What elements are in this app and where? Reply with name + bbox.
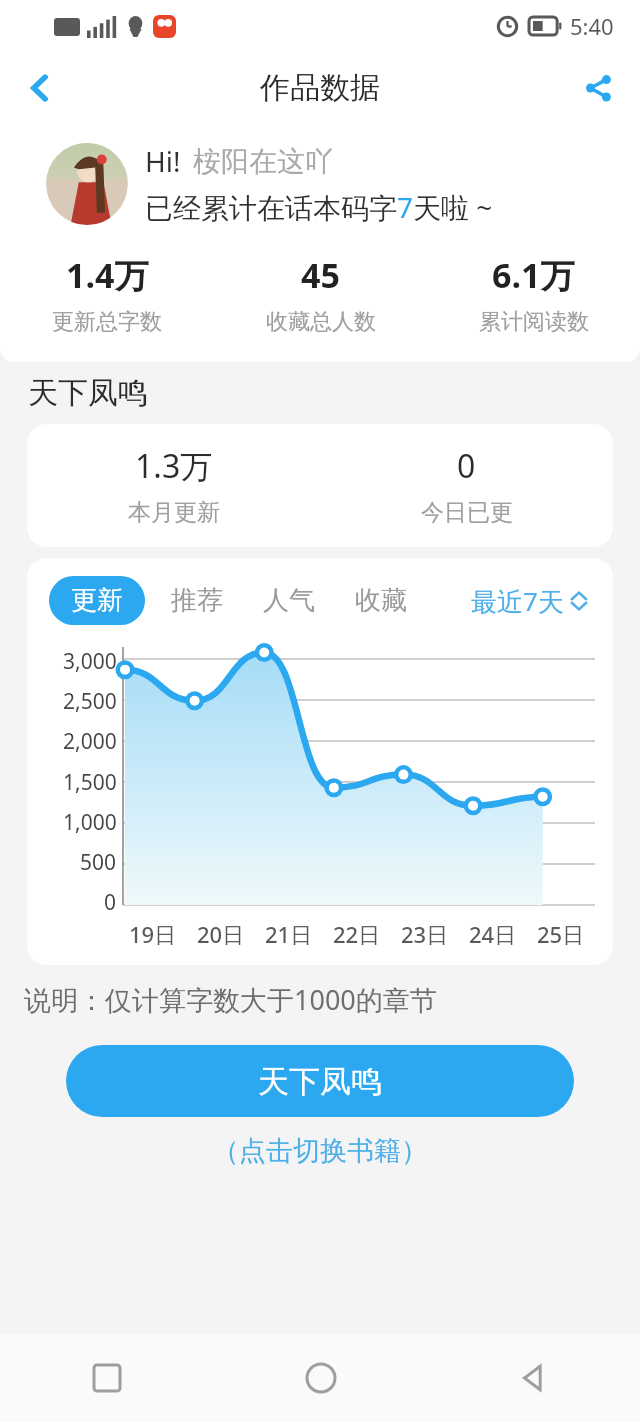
staticText: 更新总字数 — [52, 308, 162, 336]
button[interactable]: Share — [568, 58, 628, 118]
button[interactable]: 天下凤鸣 — [66, 1045, 574, 1117]
staticText: 今日已更 — [421, 498, 513, 527]
staticText: 人气 — [263, 584, 315, 617]
staticText: 3,000 — [63, 647, 117, 676]
button[interactable]: 推荐 — [165, 576, 229, 625]
staticText: 24日 — [469, 919, 517, 949]
staticText: 6.1万 — [492, 252, 575, 298]
staticText: 2,500 — [63, 687, 117, 716]
staticText: 21日 — [265, 919, 313, 949]
staticText: 天下凤鸣 — [258, 1062, 382, 1101]
staticText: 1.3万 — [135, 444, 213, 488]
staticText: 1,500 — [63, 768, 117, 797]
button[interactable]: 1.4万 — [0, 252, 214, 336]
staticText: 推荐 — [171, 584, 223, 617]
staticText: 23日 — [401, 919, 449, 949]
staticText: 最近7天 — [471, 583, 564, 619]
button[interactable]: Back — [427, 1334, 640, 1422]
staticText: 0 — [104, 888, 117, 917]
button[interactable]: 1.3万 — [27, 424, 613, 547]
staticText: Hi! — [145, 142, 181, 180]
button[interactable]: Back — [10, 58, 70, 118]
staticText: （点击切换书籍） — [212, 1134, 428, 1168]
button[interactable]: 收藏 — [349, 576, 413, 625]
button[interactable]: Recents — [0, 1334, 214, 1422]
staticText: 已经累计在话本码字7天啦 ~ — [145, 188, 493, 226]
staticText: 2,000 — [63, 727, 117, 756]
staticText: 累计阅读数 — [479, 308, 589, 336]
staticText: 更新 — [71, 584, 123, 617]
staticText: 1.4万 — [66, 252, 149, 298]
button[interactable]: 最近7天 — [467, 579, 591, 623]
staticText: 桉阳在这吖 — [193, 144, 333, 179]
button[interactable]: 人气 — [257, 576, 321, 625]
staticText: 收藏 — [355, 584, 407, 617]
staticText: 天下凤鸣 — [28, 374, 148, 412]
staticText: 22日 — [333, 919, 381, 949]
staticText: 500 — [80, 848, 117, 877]
staticText: 20日 — [197, 919, 245, 949]
staticText: 收藏总人数 — [266, 308, 376, 336]
button[interactable]: （点击切换书籍） — [208, 1130, 432, 1172]
staticText: 作品数据 — [260, 69, 380, 107]
staticText: 19日 — [129, 919, 177, 949]
staticText: 0 — [457, 444, 476, 488]
staticText: 25日 — [537, 919, 585, 949]
button[interactable]: 更新 — [49, 576, 145, 625]
staticText: 45 — [301, 252, 340, 298]
button[interactable]: Home — [214, 1334, 427, 1422]
staticText: 5:40 — [570, 11, 614, 41]
button[interactable]: 6.1万 — [427, 252, 640, 336]
staticText: 本月更新 — [128, 498, 220, 527]
staticText: 说明：仅计算字数大于1000的章节 — [24, 981, 437, 1018]
button[interactable]: 45 — [214, 252, 427, 336]
staticText: 1,000 — [63, 808, 117, 837]
